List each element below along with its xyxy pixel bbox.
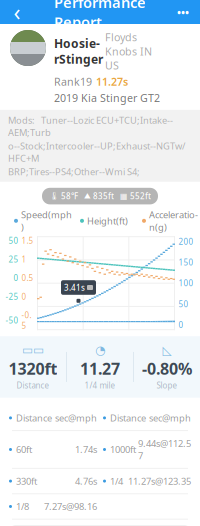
staticText: Acceleration(g) <box>149 208 198 233</box>
staticText: -0.80% <box>142 358 192 379</box>
staticText: -0.5 <box>21 310 31 331</box>
staticText: Floyds Knobs IN US <box>105 30 152 72</box>
staticText: 0 <box>13 273 18 283</box>
staticText: 9.44s@112.57 <box>138 437 191 462</box>
staticText: 60ft <box>16 443 32 456</box>
staticText: 50 <box>178 299 188 309</box>
staticText: 7.27s@98.16 <box>44 500 97 513</box>
staticText: Rank19 <box>54 74 92 89</box>
staticText: Distance <box>16 380 49 391</box>
staticText: BRP;Tires--PS4;Other--Wmi S4; <box>8 165 140 178</box>
staticText: sec@mph <box>55 412 97 424</box>
staticText: 100 <box>178 278 193 288</box>
staticText: 1/4 mile <box>84 380 115 391</box>
staticText: 11.27s <box>96 74 128 89</box>
staticText: 4.76s <box>75 475 97 487</box>
staticText: ••• <box>177 5 189 19</box>
staticText: 150 <box>178 257 193 268</box>
staticText: Distance <box>16 412 52 424</box>
staticText: 25 <box>8 254 18 265</box>
staticText: sec@mph <box>149 412 191 424</box>
staticText: Height(ft) <box>87 215 128 227</box>
staticText: 330ft <box>16 475 37 487</box>
staticText: 50 <box>8 235 18 246</box>
staticText: 0.5 <box>21 273 33 283</box>
staticText: 1/8 <box>16 500 29 513</box>
staticText: 1000ft <box>110 443 136 456</box>
staticText: ◔ <box>95 343 105 357</box>
staticText: Slope <box>156 380 177 391</box>
staticText: 1/4 <box>110 475 123 487</box>
staticText: 552ft <box>130 191 151 201</box>
staticText: 200 <box>178 236 193 247</box>
staticText: 3.41s <box>64 282 85 293</box>
staticText: ‹ <box>13 0 20 27</box>
staticText: -25 <box>5 291 18 302</box>
staticText: 0 <box>178 320 183 330</box>
staticText: 835ft <box>93 191 114 201</box>
staticText: 1.74s <box>75 443 97 456</box>
staticText: Performance Report <box>54 0 146 31</box>
staticText: 2019 Kia Stinger GT2 <box>54 91 160 105</box>
staticText: 11.27s@123.35 <box>128 475 191 487</box>
staticText: 0 <box>21 291 26 302</box>
staticText: ▭▭ <box>22 343 44 357</box>
staticText: o--Stock;Intercooler--UP;Exhaust--NGTw/H… <box>8 140 185 164</box>
staticText: ▦ <box>120 192 128 201</box>
button[interactable]: More options <box>166 0 200 24</box>
staticText: 1.5 <box>21 235 33 246</box>
staticText: ◺ <box>162 343 171 357</box>
staticText: HoosierStinger <box>54 35 103 67</box>
staticText: -50 <box>5 315 18 326</box>
button[interactable]: Back <box>0 0 34 24</box>
staticText: Distance <box>110 412 146 424</box>
staticText: 11.27 <box>80 358 120 379</box>
staticText: 1320ft <box>8 358 57 379</box>
staticText: Speed(mph) <box>21 208 72 233</box>
staticText: 1 <box>21 254 26 265</box>
staticText: Mods: Tuner--Lozic ECU+TCU;Intake--AEM;T… <box>8 114 173 139</box>
staticText: ⛰ <box>84 192 91 200</box>
staticText: 58°F <box>61 191 78 201</box>
staticText: 🌡 <box>49 191 59 201</box>
